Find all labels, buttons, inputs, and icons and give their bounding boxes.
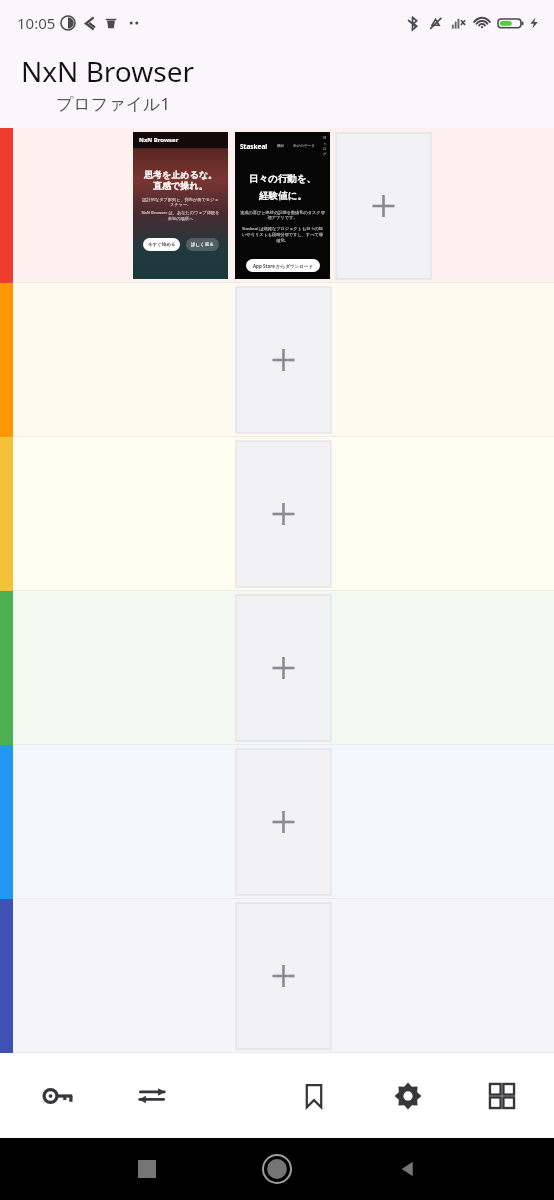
button[interactable]: Add tab <box>236 287 331 433</box>
staticText: 機能 <box>277 144 285 149</box>
button[interactable]: Passwords <box>32 1070 84 1122</box>
button[interactable]: Home <box>262 1154 292 1184</box>
button[interactable]: Add tab <box>236 595 331 741</box>
button[interactable]: NxN Browser <box>133 132 228 279</box>
staticText: 設計的なタブ配列と、指先が奏でるジェスチャー。 <box>141 197 220 207</box>
staticText: 思考を止めるな。 <box>144 169 217 180</box>
staticText: 詳しく見る <box>191 242 214 248</box>
staticText: 直感で操れ。 <box>153 180 208 191</box>
staticText: 今すぐ始める <box>148 242 176 248</box>
staticText: 経験値に。 <box>259 190 307 202</box>
staticText: NxN Browser <box>21 52 195 90</box>
staticText: 達成の喜びと絶対の記憶を数値化のタスク管理アプリです。 <box>240 210 325 220</box>
staticText: Staskeal <box>240 142 268 151</box>
staticText: 日々ログ <box>323 136 330 156</box>
button[interactable]: Bookmarks <box>288 1070 340 1122</box>
button[interactable]: Add tab <box>336 133 431 279</box>
staticText: App Store からダウンロード <box>253 263 313 269</box>
button[interactable]: Staskeal <box>235 132 330 279</box>
staticText: プロファイル1 <box>56 92 171 115</box>
button[interactable]: Add tab <box>236 749 331 895</box>
button[interactable]: Switch profile <box>126 1070 178 1122</box>
button[interactable]: Add tab <box>236 903 331 1049</box>
button[interactable]: Back <box>395 1157 419 1181</box>
staticText: NxN Browser <box>139 136 179 144</box>
staticText: NxN Browser は、あなたのウェブ体験を未知の場所へ <box>141 210 220 221</box>
button[interactable]: Add tab <box>236 441 331 587</box>
button[interactable]: Tabs <box>476 1070 528 1122</box>
staticText: 学びのデータ <box>293 144 315 149</box>
staticText: Staskeal は煩雑なプロジェクトも日々の短いやりリストも段階分管ですし、す… <box>240 226 325 243</box>
staticText: 10:05 <box>17 13 56 33</box>
staticText: 日々の行動を、 <box>249 173 316 185</box>
button[interactable]: Settings <box>382 1070 434 1122</box>
